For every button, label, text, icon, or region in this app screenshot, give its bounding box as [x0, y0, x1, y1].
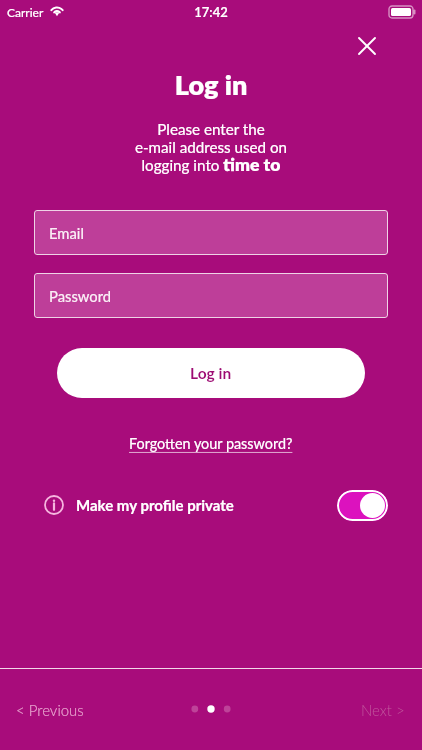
button[interactable]: Next > [349, 691, 417, 729]
staticText: Log in [190, 364, 232, 383]
staticText: Carrier [7, 5, 44, 19]
staticText: Log in [0, 68, 422, 100]
button[interactable]: < Previous [4, 691, 96, 729]
staticText: Please enter the e-mail address used on … [0, 120, 422, 174]
button[interactable]: Log in [57, 348, 365, 398]
staticText: Email [49, 224, 84, 242]
staticText: 17:42 [0, 4, 422, 20]
button[interactable]: Make my profile private [44, 489, 388, 521]
button[interactable]: Password [34, 273, 388, 318]
staticText: Password [49, 287, 112, 305]
button[interactable]: Email [34, 210, 388, 255]
button[interactable]: Close [351, 30, 383, 62]
button[interactable]: Forgotten your password? [125, 433, 297, 454]
button[interactable]: Make my profile private, on [337, 490, 388, 521]
staticText: Make my profile private [76, 496, 234, 514]
